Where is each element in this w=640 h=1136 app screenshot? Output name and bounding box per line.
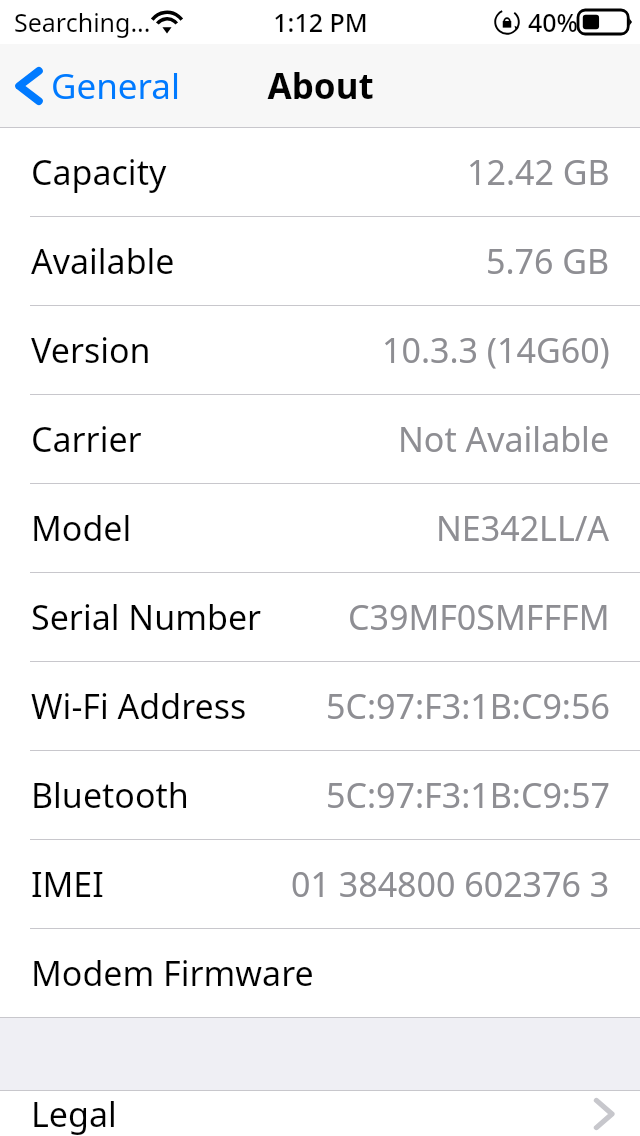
staticText: NE342LL/A [436, 505, 610, 551]
button[interactable]: Model [0, 484, 640, 572]
button[interactable]: Wi-Fi Address [0, 662, 640, 750]
staticText: Version [31, 327, 151, 373]
button[interactable]: Capacity [0, 128, 640, 216]
staticText: 5C:97:F3:1B:C9:57 [326, 772, 610, 818]
button[interactable]: Carrier [0, 395, 640, 483]
button[interactable]: Modem Firmware [0, 929, 640, 1017]
staticText: About [267, 62, 374, 110]
button[interactable]: Available [0, 217, 640, 305]
staticText: Capacity [31, 149, 167, 195]
staticText: 1:12 PM [273, 5, 368, 39]
staticText: Wi-Fi Address [31, 683, 247, 729]
other: Open Legal [594, 1097, 614, 1131]
staticText: 01 384800 602376 3 [291, 861, 610, 907]
staticText: IMEI [31, 861, 104, 907]
button[interactable]: Serial Number [0, 573, 640, 661]
staticText: Available [31, 238, 175, 284]
staticText: Modem Firmware [31, 950, 314, 996]
staticText: Legal [31, 1091, 117, 1136]
staticText: C39MF0SMFFFM [348, 594, 610, 640]
staticText: Not Available [398, 416, 610, 462]
staticText: Searching... [14, 5, 151, 39]
button[interactable]: IMEI [0, 840, 640, 928]
button[interactable]: General [0, 44, 195, 128]
staticText: 40% [528, 5, 578, 39]
staticText: Carrier [31, 416, 142, 462]
button[interactable]: Bluetooth [0, 751, 640, 839]
staticText: 10.3.3 (14G60) [382, 327, 610, 373]
button[interactable]: Version [0, 306, 640, 394]
staticText: Serial Number [31, 594, 262, 640]
staticText: General [51, 62, 181, 110]
button[interactable]: Legal [0, 1091, 640, 1136]
staticText: 5.76 GB [486, 238, 610, 284]
staticText: Model [31, 505, 132, 551]
staticText: 12.42 GB [467, 149, 610, 195]
staticText: 5C:97:F3:1B:C9:56 [326, 683, 610, 729]
staticText: Bluetooth [31, 772, 189, 818]
